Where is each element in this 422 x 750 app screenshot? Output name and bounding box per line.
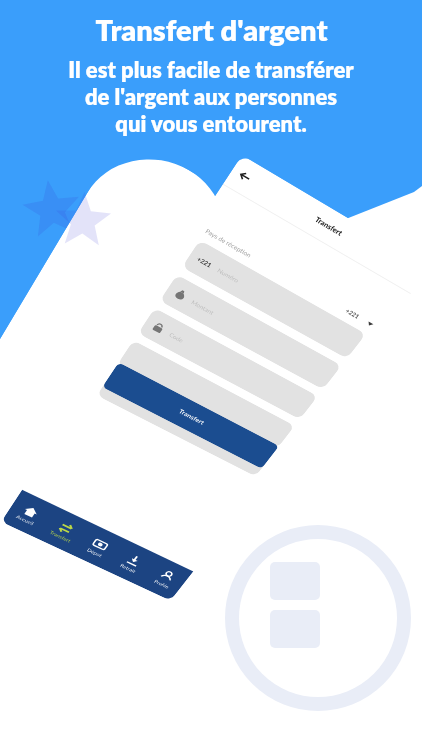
staticText: Transfert	[177, 407, 207, 427]
button[interactable]: Profile	[143, 564, 187, 593]
button[interactable]: Dépot	[76, 532, 121, 562]
staticText: Transfert d'argent	[95, 12, 328, 47]
staticText: Transfert	[313, 215, 345, 238]
button[interactable]	[117, 340, 295, 448]
button[interactable]: +221	[344, 307, 375, 328]
button[interactable]: Montant	[159, 274, 342, 390]
staticText: Accueil	[15, 514, 35, 526]
button[interactable]: Code	[138, 308, 318, 419]
button[interactable]: Retour	[234, 166, 256, 187]
button[interactable]	[97, 371, 273, 476]
button[interactable]: +221	[182, 240, 366, 359]
button[interactable]: Accueil	[6, 498, 52, 530]
staticText: Transfert	[49, 529, 72, 543]
staticText: Code	[168, 331, 185, 344]
staticText: Numéro	[216, 267, 241, 284]
staticText: Pays de réception	[204, 227, 253, 259]
button[interactable]: Transfert	[41, 515, 86, 546]
staticText: Il est plus facile de transférer de l'ar…	[68, 56, 354, 137]
staticText: Dépot	[86, 547, 104, 558]
staticText: Retrait	[119, 563, 137, 574]
staticText: +221	[344, 307, 361, 320]
staticText: +221	[196, 255, 214, 269]
staticText: Montant	[190, 298, 216, 316]
staticText: Profile	[153, 578, 170, 589]
button[interactable]: Transfert	[102, 362, 279, 469]
button[interactable]: Retrait	[110, 548, 154, 578]
